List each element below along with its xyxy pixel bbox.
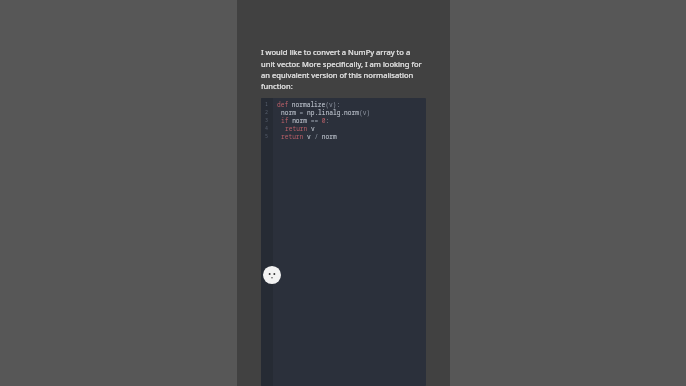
- staticText: 1: [265, 101, 269, 108]
- staticText: 3: [265, 117, 269, 124]
- button[interactable]: 1: [261, 98, 426, 386]
- button[interactable]: Profile avatar: [261, 264, 283, 286]
- staticText: norm = np.linalg.norm(v): [281, 108, 371, 116]
- staticText: return v / norm: [281, 132, 337, 140]
- staticText: 4: [265, 125, 269, 132]
- staticText: return v: [285, 124, 315, 132]
- staticText: I would like to convert a NumPy array to…: [261, 47, 426, 91]
- staticText: 2: [265, 109, 269, 116]
- staticText: def normalize(v):: [277, 100, 341, 108]
- staticText: 5: [265, 133, 269, 140]
- staticText: if norm == 0:: [281, 116, 330, 124]
